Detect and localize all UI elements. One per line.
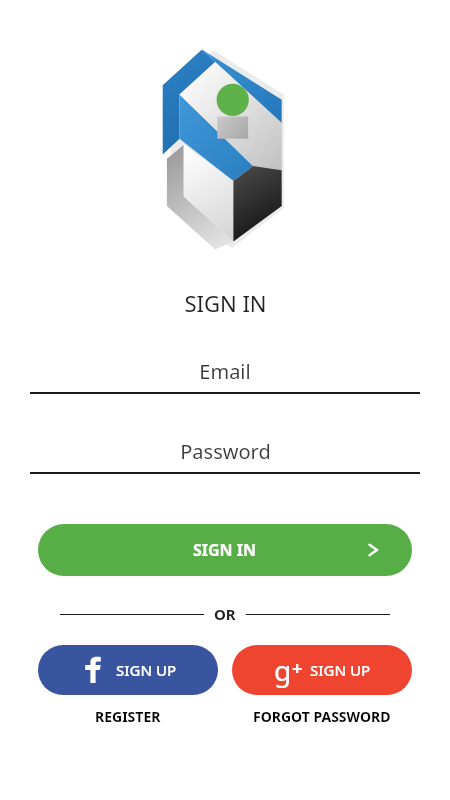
staticText: SIGN UP [116, 660, 177, 680]
staticText: FORGOT PASSWORD [253, 707, 391, 726]
staticText: SIGN IN [184, 288, 267, 318]
button[interactable]: SIGN UP [38, 645, 218, 695]
button[interactable]: REGISTER [38, 707, 218, 726]
staticText: Email [199, 358, 251, 385]
button[interactable]: FORGOT PASSWORD [232, 707, 412, 726]
staticText: REGISTER [95, 707, 161, 726]
staticText: SIGN IN [193, 539, 257, 561]
staticText: g [274, 651, 292, 689]
button[interactable]: Email [30, 358, 420, 394]
staticText: OR [214, 604, 236, 624]
staticText: SIGN UP [310, 660, 371, 680]
staticText: + [292, 656, 303, 681]
button[interactable]: g [232, 645, 412, 695]
staticText: Password [180, 438, 271, 465]
button[interactable]: SIGN IN [38, 524, 412, 576]
button[interactable]: Password [30, 438, 420, 474]
